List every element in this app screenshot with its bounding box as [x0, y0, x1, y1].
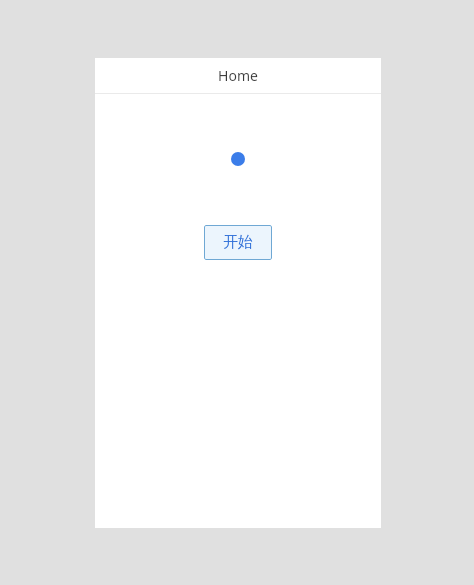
staticText: 开始 [223, 233, 253, 252]
staticText: Home [218, 66, 258, 85]
button[interactable]: 开始 [204, 225, 272, 260]
other: Status indicator [231, 152, 245, 166]
